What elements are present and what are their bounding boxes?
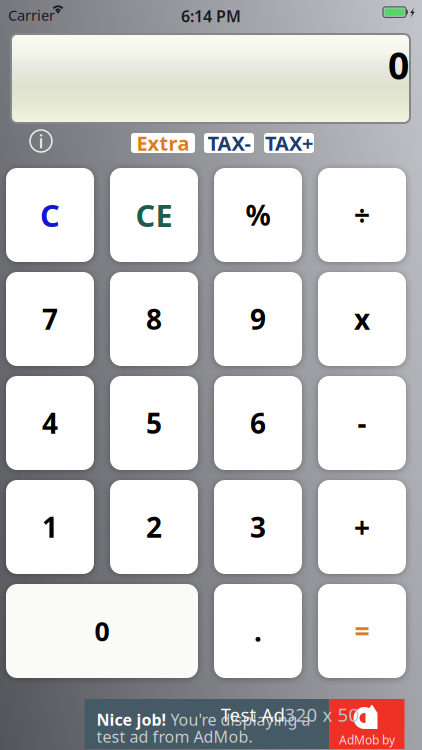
staticText: 8 [146, 300, 162, 338]
staticText: 0 [388, 40, 409, 90]
button[interactable]: 0 [6, 584, 198, 678]
staticText: 320 x 50 [284, 702, 359, 727]
button[interactable]: 1 [6, 480, 94, 574]
staticText: % [245, 196, 270, 234]
button[interactable]: CE [110, 168, 198, 262]
button[interactable]: TAX- [204, 133, 254, 153]
button[interactable]: - [318, 376, 406, 470]
staticText: Nice job! [96, 709, 166, 730]
button[interactable]: . [214, 584, 302, 678]
staticText: 5 [146, 404, 162, 442]
staticText: ÷ [354, 196, 370, 234]
staticText: AdMob by Google [339, 732, 395, 750]
staticText: = [354, 613, 369, 649]
staticText: 3 [250, 508, 266, 546]
button[interactable]: 9 [214, 272, 302, 366]
staticText: 6:14 PM [181, 5, 241, 27]
button[interactable]: Info [30, 130, 52, 152]
staticText: TAX- [207, 130, 250, 156]
button[interactable]: 8 [110, 272, 198, 366]
staticText: 1 [42, 508, 58, 546]
staticText: Carrier [8, 5, 55, 25]
button[interactable]: ÷ [318, 168, 406, 262]
staticText: You're displaying a [166, 709, 310, 730]
button[interactable]: 6 [214, 376, 302, 470]
staticText: 6 [250, 404, 266, 442]
staticText: TAX+ [265, 130, 313, 156]
staticText: 4 [42, 404, 58, 442]
staticText: 2 [146, 508, 162, 546]
staticText: C [40, 195, 60, 235]
staticText: test ad from AdMob. [96, 726, 252, 747]
button[interactable]: Extra [131, 133, 195, 153]
staticText: 7 [42, 300, 58, 338]
button[interactable]: x [318, 272, 406, 366]
button[interactable]: C [6, 168, 94, 262]
staticText: i [38, 129, 43, 153]
staticText: Test Ad [220, 702, 284, 727]
staticText: + [354, 508, 370, 546]
button[interactable]: % [214, 168, 302, 262]
staticText: Extra [136, 130, 189, 156]
staticText: . [254, 612, 262, 650]
button[interactable]: 4 [6, 376, 94, 470]
button[interactable]: 3 [214, 480, 302, 574]
button[interactable]: 7 [6, 272, 94, 366]
staticText: 9 [250, 300, 266, 338]
staticText: 0 [94, 613, 109, 649]
button[interactable]: 5 [110, 376, 198, 470]
staticText: CE [135, 195, 172, 235]
staticText: x [354, 300, 370, 338]
button[interactable]: TAX+ [264, 133, 314, 153]
button[interactable]: + [318, 480, 406, 574]
button[interactable]: = [318, 584, 406, 678]
staticText: - [357, 404, 366, 442]
button[interactable]: 2 [110, 480, 198, 574]
